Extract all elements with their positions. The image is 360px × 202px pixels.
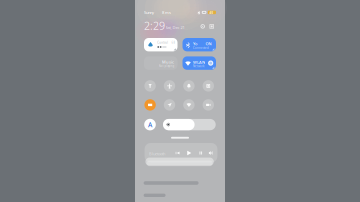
staticText: Yo <box>193 41 197 46</box>
staticText: 68 <box>171 41 175 44</box>
staticText: Network <box>193 64 204 68</box>
button[interactable]: Flashlight <box>144 80 156 92</box>
button[interactable]: Music <box>144 56 177 70</box>
button[interactable]: Screen recorder <box>203 99 214 111</box>
staticText: Connected <box>193 46 209 50</box>
button[interactable]: Location <box>164 99 175 111</box>
button[interactable]: WLAN <box>182 56 216 70</box>
staticText: WLAN <box>193 59 205 65</box>
button[interactable]: Silent <box>183 80 195 92</box>
staticText: Sunny <box>144 10 154 15</box>
staticText: Not playing <box>159 64 175 68</box>
button[interactable]: Screenshot <box>203 80 214 92</box>
staticText: 40 <box>209 11 213 15</box>
staticText: Sat, Dec 21 <box>165 25 184 30</box>
staticText: A <box>148 120 152 129</box>
button[interactable]: Bluetooth <box>182 38 216 51</box>
staticText: Control <box>157 41 168 44</box>
button[interactable]: Edit toggles <box>209 24 214 29</box>
button[interactable]: Hotspot <box>183 99 195 111</box>
button[interactable]: Humidity <box>144 38 177 51</box>
button[interactable]: Brightness <box>163 119 216 130</box>
button[interactable]: Auto brightness <box>144 119 156 130</box>
staticText: 2:29 <box>144 19 165 33</box>
staticText: Bluetooth <box>149 151 165 156</box>
staticText: Music <box>162 59 174 65</box>
button[interactable]: Aeroplane mode <box>164 80 175 92</box>
staticText: 8 ms <box>162 10 171 15</box>
button[interactable]: Settings <box>200 24 205 29</box>
button[interactable]: Media player <box>145 143 217 162</box>
button[interactable]: Mobile data <box>144 99 156 111</box>
staticText: ON <box>205 41 211 46</box>
